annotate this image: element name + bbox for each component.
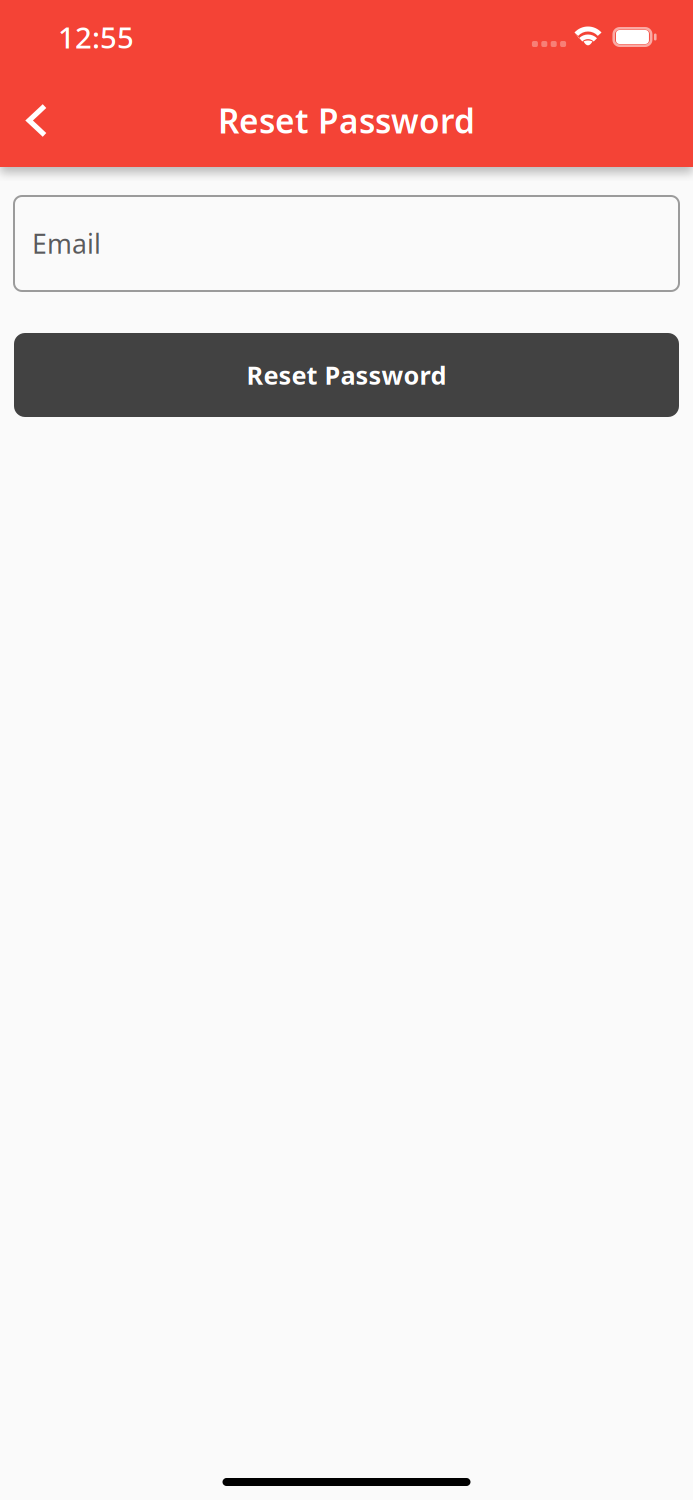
staticText: 12:55: [58, 17, 134, 56]
staticText: Reset Password: [246, 358, 446, 392]
button[interactable]: Back: [0, 84, 74, 156]
staticText: Email: [32, 226, 101, 261]
staticText: Reset Password: [218, 98, 475, 143]
button[interactable]: Email: [14, 196, 679, 291]
button[interactable]: Reset Password: [14, 333, 679, 417]
